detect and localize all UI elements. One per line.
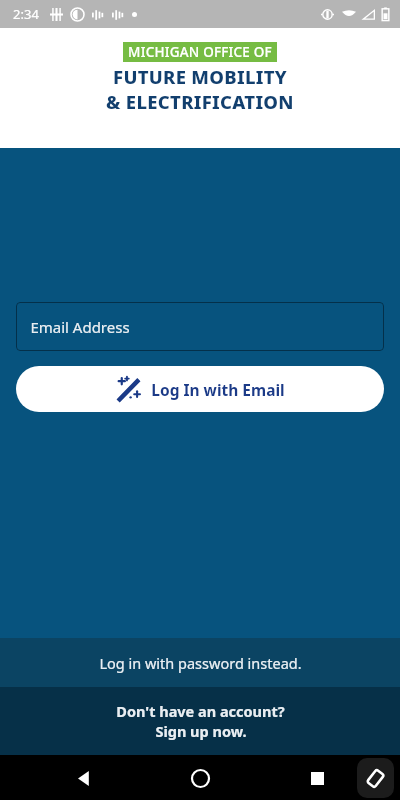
button[interactable]: Don't have an account?	[0, 687, 400, 755]
staticText: Don't have an account?	[116, 701, 285, 721]
button[interactable]: Rotate screen	[357, 758, 394, 798]
button[interactable]: Home	[183, 761, 217, 795]
staticText: Log In with Email	[151, 379, 285, 400]
staticText: 2:34	[13, 5, 39, 23]
button[interactable]: Log in with password instead.	[0, 638, 400, 687]
staticText: Email Address	[30, 317, 130, 337]
staticText: & ELECTRIFICATION	[106, 89, 294, 114]
staticText: MICHIGAN OFFICE OF	[128, 43, 272, 61]
button[interactable]: Log In with Email	[16, 366, 384, 412]
staticText: FUTURE MOBILITY	[113, 64, 287, 89]
button[interactable]: Email Address	[16, 302, 384, 351]
button[interactable]: Back	[70, 763, 100, 793]
staticText: Log in with password instead.	[99, 653, 302, 673]
staticText: Sign up now.	[155, 721, 247, 741]
button[interactable]: Recent apps	[302, 763, 332, 793]
